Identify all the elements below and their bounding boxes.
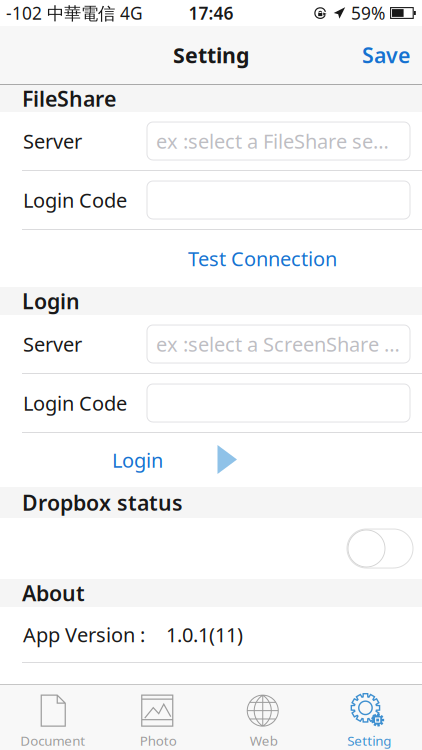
staticText: FileShare bbox=[22, 84, 116, 113]
button[interactable]: Document bbox=[0, 684, 105, 750]
staticText: Login bbox=[112, 447, 163, 473]
staticText: Dropbox status bbox=[22, 488, 183, 517]
staticText: Web bbox=[250, 732, 278, 749]
staticText: Server bbox=[23, 128, 82, 154]
staticText: Setting bbox=[173, 41, 249, 69]
button[interactable]: Test Connection bbox=[178, 237, 347, 280]
staticText: Document bbox=[20, 732, 85, 749]
staticText: ex :select a ScreenShare s… bbox=[156, 331, 402, 357]
staticText: 17:46 bbox=[188, 1, 233, 24]
staticText: 1.0.1(11) bbox=[166, 621, 243, 648]
staticText: ex :select a FileShare se… bbox=[156, 128, 389, 154]
staticText: Login Code bbox=[23, 390, 127, 416]
button[interactable]: Setting bbox=[316, 684, 422, 750]
staticText: -102 中華電信 4G bbox=[6, 1, 143, 24]
staticText: Photo bbox=[140, 732, 177, 749]
button[interactable]: Photo bbox=[105, 684, 211, 750]
staticText: 59% bbox=[351, 1, 385, 24]
staticText: Login bbox=[22, 287, 80, 315]
button[interactable]: Login bbox=[106, 439, 169, 481]
staticText: Login Code bbox=[23, 187, 127, 213]
button[interactable]: Web bbox=[211, 684, 316, 750]
staticText: Save bbox=[362, 41, 410, 69]
button[interactable]: Start bbox=[217, 444, 238, 475]
button[interactable]: Save bbox=[344, 26, 422, 84]
staticText: App Version : bbox=[23, 621, 145, 648]
staticText: Setting bbox=[347, 732, 391, 749]
button[interactable]: Dropbox status bbox=[347, 529, 413, 568]
staticText: Test Connection bbox=[188, 245, 337, 272]
staticText: Server bbox=[23, 331, 82, 357]
staticText: About bbox=[22, 579, 85, 607]
